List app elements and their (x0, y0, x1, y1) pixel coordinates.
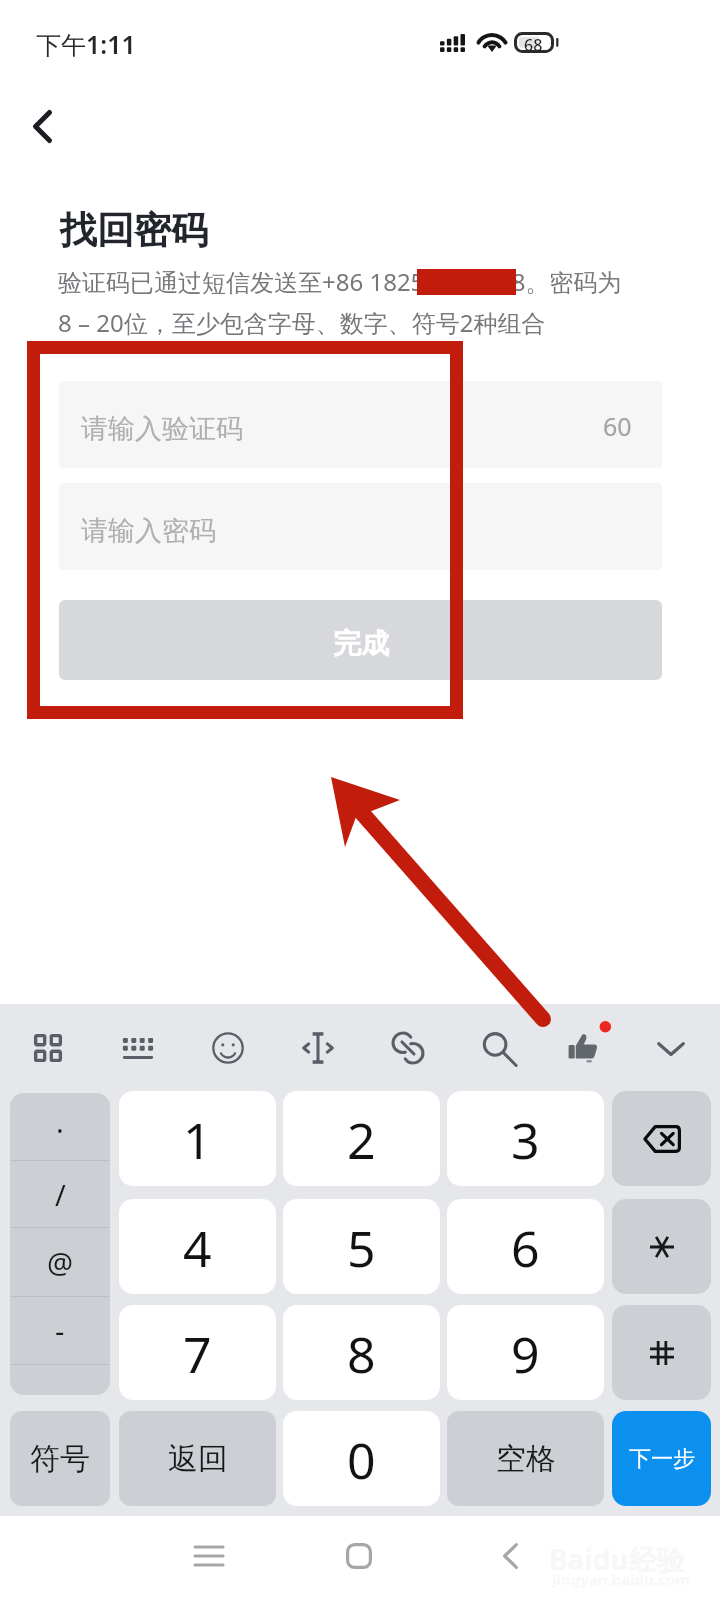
staticText: 空格 (496, 1440, 556, 1478)
staticText: @ (47, 1243, 74, 1282)
button[interactable]: 空格 (447, 1411, 604, 1506)
button[interactable]: Text editing (274, 1004, 362, 1092)
button[interactable]: 6 (447, 1199, 604, 1294)
staticText: 3 (511, 1106, 540, 1174)
button[interactable]: Back (2, 86, 82, 166)
button[interactable]: 8 (283, 1305, 440, 1400)
button[interactable]: 完成 (59, 600, 662, 680)
staticText: 验证码已通过短信发送至+86 1825 8。密码为 8 – 20位，至少包含字母… (58, 265, 622, 339)
button[interactable]: 请输入密码 (59, 483, 662, 570)
staticText: 完成 (333, 626, 389, 661)
staticText: 9 (511, 1320, 540, 1388)
button[interactable]: 0 (283, 1411, 440, 1506)
staticText: 68 (524, 34, 543, 56)
button[interactable]: 1 (119, 1091, 276, 1186)
button[interactable]: 符号 (10, 1411, 110, 1506)
staticText: 返回 (168, 1440, 228, 1478)
button[interactable]: 请输入验证码 (59, 381, 662, 468)
button[interactable]: Back (470, 1516, 550, 1596)
button[interactable]: Link (364, 1004, 452, 1092)
staticText: 0 (347, 1426, 376, 1494)
staticText: / (55, 1175, 66, 1214)
staticText: 4 (183, 1214, 212, 1282)
button[interactable]: 5 (283, 1199, 440, 1294)
button[interactable]: Recent apps (169, 1516, 249, 1596)
button[interactable]: Emoji (184, 1004, 272, 1092)
staticText: 7 (183, 1320, 212, 1388)
staticText: · (56, 1110, 64, 1149)
button[interactable]: Hide keyboard (627, 1004, 715, 1092)
button[interactable]: 下一步 (612, 1411, 711, 1506)
staticText: 2 (347, 1106, 376, 1174)
staticText: 5 (347, 1214, 376, 1282)
staticText: 请输入密码 (81, 514, 216, 548)
button[interactable]: 2 (283, 1091, 440, 1186)
staticText: 下一步 (629, 1445, 695, 1473)
button[interactable]: 3 (447, 1091, 604, 1186)
staticText: 找回密码 (60, 207, 208, 254)
button[interactable]: 返回 (119, 1411, 276, 1506)
button[interactable]: · (10, 1093, 110, 1395)
button[interactable]: 4 (119, 1199, 276, 1294)
staticText: 8 (347, 1320, 376, 1388)
staticText: 6 (511, 1214, 540, 1282)
button[interactable]: Keyboard layout (94, 1004, 182, 1092)
button[interactable]: Home (319, 1516, 399, 1596)
staticText: Baidu经验 (549, 1540, 685, 1578)
staticText: 1 (183, 1106, 212, 1174)
button[interactable]: 7 (119, 1305, 276, 1400)
button[interactable]: Search (454, 1004, 542, 1092)
button[interactable]: Thumbs up (539, 1004, 627, 1092)
staticText: 下午1:11 (36, 27, 136, 61)
staticText: jingyan.baidu.com (552, 1569, 690, 1589)
staticText: 请输入验证码 (81, 412, 243, 446)
staticText: - (55, 1311, 65, 1350)
staticText: 符号 (30, 1440, 90, 1478)
button[interactable]: Backspace (612, 1091, 711, 1186)
button[interactable]: Asterisk (612, 1199, 711, 1294)
button[interactable]: 9 (447, 1305, 604, 1400)
button[interactable]: Apps (4, 1004, 92, 1092)
staticText: 60 (603, 409, 632, 443)
button[interactable]: Hash (612, 1305, 711, 1400)
